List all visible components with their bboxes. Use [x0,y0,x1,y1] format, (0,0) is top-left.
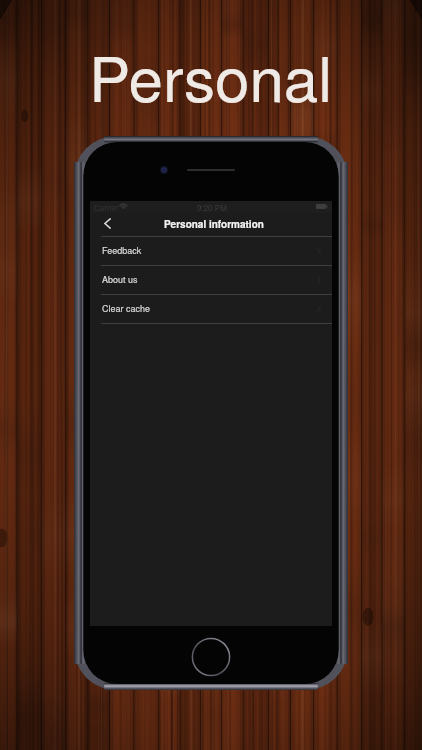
button[interactable]: About us [90,265,332,294]
staticText: Personal [89,31,333,120]
button[interactable]: Back [96,213,120,237]
button[interactable]: Clear cache [90,294,332,323]
staticText: Clear cache [102,302,151,315]
staticText: Feedback [102,244,142,257]
staticText: About us [102,273,138,286]
staticText: 9:20 PM [197,202,227,213]
staticText: Carrier [94,202,119,213]
button[interactable]: Feedback [90,236,332,265]
staticText: Personal information [164,217,264,231]
